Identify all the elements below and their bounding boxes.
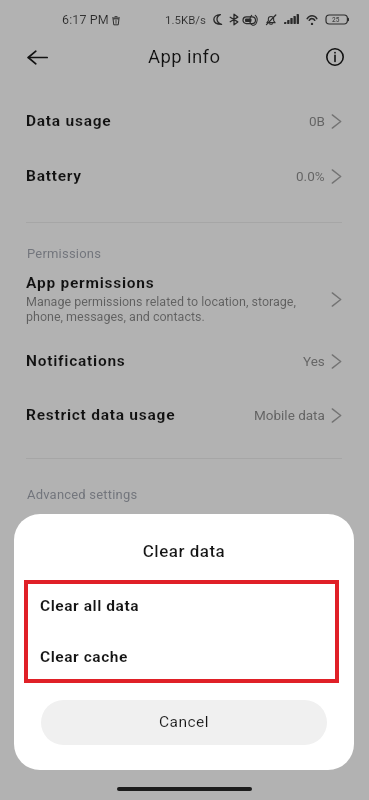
staticText: Data usage xyxy=(26,112,112,130)
button[interactable]: Clear cache xyxy=(24,631,339,682)
staticText: 25 xyxy=(332,16,340,24)
staticText: Battery usage xyxy=(26,516,133,534)
staticText: Restrict data usage xyxy=(26,406,176,424)
staticText: Cancel xyxy=(159,713,209,731)
staticText: Notifications xyxy=(26,352,126,370)
staticText: Clear all data xyxy=(40,597,140,615)
staticText: 6:17 PM xyxy=(62,12,109,27)
staticText: Advanced settings xyxy=(27,487,138,502)
staticText: Clear data xyxy=(14,541,354,561)
staticText: 0B xyxy=(309,113,325,129)
staticText: App info xyxy=(148,46,221,68)
staticText: 1.5KB/s xyxy=(165,13,207,26)
button[interactable]: Notifications xyxy=(0,337,369,385)
staticText: Permissions xyxy=(27,246,102,261)
button[interactable]: Battery xyxy=(0,152,369,200)
staticText: Mobile data xyxy=(254,407,325,423)
staticText: Battery xyxy=(26,167,82,185)
button[interactable]: Restrict data usage xyxy=(0,391,369,439)
button[interactable]: Back xyxy=(17,37,57,77)
staticText: Yes xyxy=(303,353,325,369)
staticText: App permissions xyxy=(26,274,155,292)
staticText: Manage permissions related to location, … xyxy=(26,294,309,324)
staticText: 0.0% xyxy=(296,168,325,184)
button[interactable]: Clear all data xyxy=(24,580,339,631)
staticText: Clear cache xyxy=(40,648,128,666)
button[interactable]: App permissions xyxy=(0,266,369,332)
button[interactable]: Data usage xyxy=(0,97,369,145)
button[interactable]: Battery usage xyxy=(0,501,369,549)
button[interactable]: Cancel xyxy=(41,700,327,745)
button[interactable]: App details xyxy=(315,37,355,77)
